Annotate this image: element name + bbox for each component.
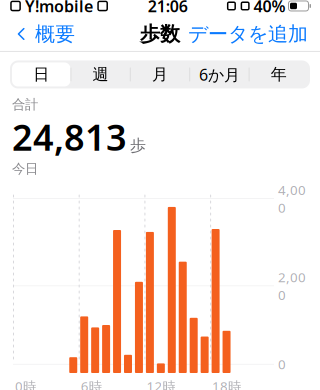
staticText: データを追加	[188, 22, 308, 46]
staticText: 21:06	[148, 0, 188, 16]
staticText: 6か月	[199, 64, 240, 85]
staticText: 6時	[81, 377, 102, 390]
staticText: 概要	[35, 22, 75, 46]
staticText: 週	[93, 65, 109, 84]
staticText: 4,000	[278, 181, 306, 216]
button[interactable]: データを追加	[180, 17, 316, 51]
button[interactable]: 月	[131, 62, 189, 86]
staticText: Y!mobile	[25, 0, 93, 16]
button[interactable]: 週	[71, 62, 130, 86]
button[interactable]: 日	[12, 62, 70, 86]
button[interactable]: 6か月	[190, 62, 249, 86]
staticText: 年	[271, 65, 287, 84]
staticText: 歩数	[140, 22, 180, 46]
staticText: 0時	[15, 377, 36, 390]
staticText: 18時	[212, 377, 241, 390]
staticText: 0	[278, 355, 286, 373]
staticText: 24,813	[12, 113, 127, 161]
staticText: 月	[152, 65, 168, 84]
staticText: 日	[33, 65, 49, 84]
staticText: 今日	[12, 161, 38, 177]
staticText: 合計	[12, 96, 38, 113]
button[interactable]: 年	[250, 62, 308, 86]
staticText: 40%	[253, 0, 285, 16]
staticText: 12時	[146, 377, 175, 390]
staticText: 2,000	[278, 268, 306, 304]
staticText: 歩	[130, 136, 146, 155]
button[interactable]: 概要	[4, 17, 83, 51]
